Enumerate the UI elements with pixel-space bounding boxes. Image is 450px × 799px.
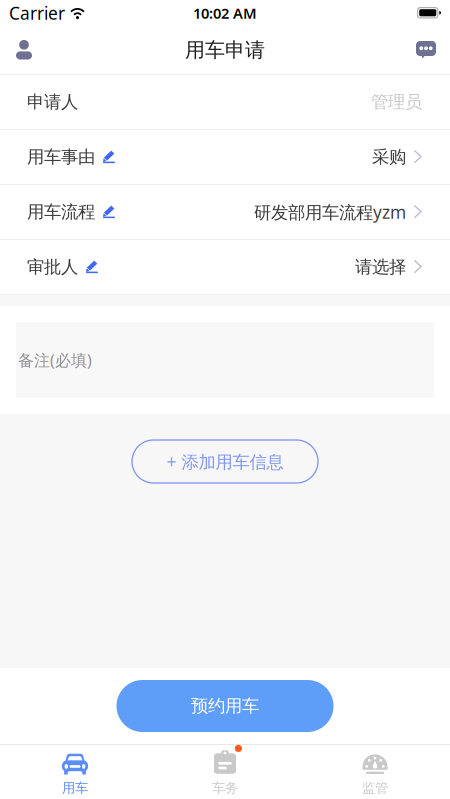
button[interactable]: + 添加用车信息 [132, 440, 318, 483]
staticText: 车务 [212, 780, 238, 796]
button[interactable]: 监管 [300, 744, 450, 799]
button[interactable]: 用车 [0, 744, 150, 799]
staticText: + 添加用车信息 [166, 450, 283, 473]
staticText: 申请人 [27, 91, 78, 113]
staticText: 用车事由 [27, 146, 95, 168]
button[interactable]: 申请人 [0, 75, 450, 130]
staticText: 用车 [62, 780, 88, 796]
staticText: 10:02 AM [193, 3, 257, 23]
button[interactable]: 审批人 [0, 240, 450, 295]
staticText: 监管 [362, 780, 388, 796]
staticText: 用车申请 [185, 38, 265, 62]
staticText: 采购 [372, 146, 406, 168]
button[interactable]: 用车流程 [0, 185, 450, 240]
staticText: 请选择 [355, 256, 406, 278]
button[interactable]: 预约用车 [116, 680, 333, 732]
staticText: 审批人 [27, 256, 78, 278]
button[interactable]: Messages [404, 30, 448, 70]
staticText: 备注(必填) [18, 349, 92, 371]
button[interactable]: 用车事由 [0, 130, 450, 185]
staticText: 研发部用车流程yzm [254, 200, 406, 223]
staticText: 用车流程 [27, 201, 95, 223]
staticText: Carrier [9, 1, 65, 24]
staticText: 管理员 [371, 91, 422, 113]
button[interactable]: 车务 [150, 744, 300, 799]
button[interactable]: Profile [2, 30, 46, 70]
staticText: 预约用车 [191, 695, 259, 717]
